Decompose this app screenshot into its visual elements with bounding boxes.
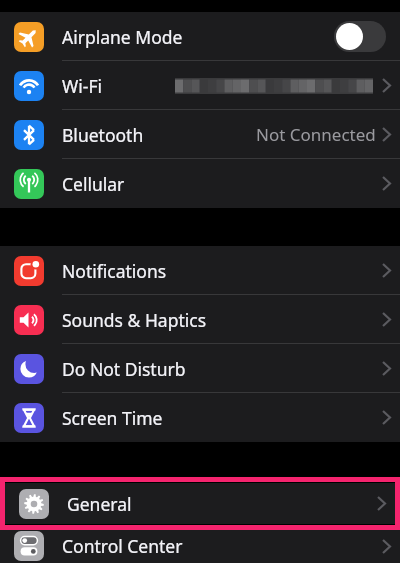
staticText: Sounds & Haptics: [62, 308, 207, 332]
button[interactable]: General: [5, 483, 395, 524]
staticText: Bluetooth: [62, 123, 144, 147]
staticText: Control Center: [62, 534, 183, 558]
staticText: General: [67, 492, 132, 516]
button[interactable]: Toggle Airplane Mode: [334, 21, 386, 52]
staticText: Do Not Disturb: [62, 357, 186, 381]
staticText: Notifications: [62, 259, 167, 283]
staticText: Cellular: [62, 172, 125, 196]
button[interactable]: Wi-Fi: [0, 61, 400, 110]
button[interactable]: Do Not Disturb: [0, 344, 400, 393]
staticText: Screen Time: [62, 406, 163, 430]
staticText: Airplane Mode: [62, 25, 183, 49]
button[interactable]: Cellular: [0, 159, 400, 208]
button[interactable]: Control Center: [0, 529, 400, 563]
staticText: Wi-Fi: [62, 74, 103, 98]
staticText: Not Connected: [256, 123, 376, 146]
button[interactable]: Bluetooth: [0, 110, 400, 159]
button[interactable]: Notifications: [0, 246, 400, 295]
button[interactable]: Airplane Mode: [0, 12, 400, 61]
button[interactable]: Screen Time: [0, 393, 400, 442]
button[interactable]: Sounds & Haptics: [0, 295, 400, 344]
